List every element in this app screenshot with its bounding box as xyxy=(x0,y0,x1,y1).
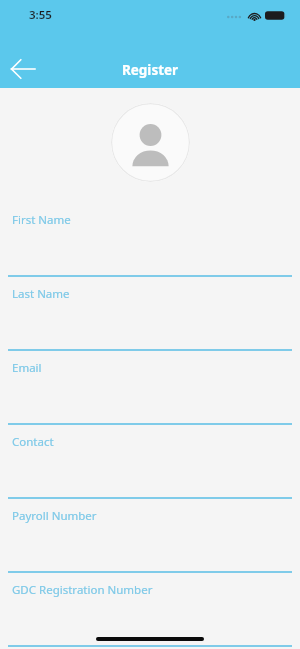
button[interactable]: Profile photo xyxy=(111,103,190,182)
button[interactable]: Email xyxy=(0,351,300,425)
staticText: 3:55 xyxy=(29,7,52,23)
staticText: Contact xyxy=(12,434,54,450)
staticText: GDC Registration Number xyxy=(12,582,153,598)
staticText: Register xyxy=(0,61,300,79)
staticText: First Name xyxy=(12,212,71,228)
button[interactable]: First Name xyxy=(0,203,300,277)
button[interactable]: Back xyxy=(4,50,42,88)
staticText: Last Name xyxy=(12,286,70,302)
button[interactable]: Payroll Number xyxy=(0,499,300,573)
button[interactable]: Contact xyxy=(0,425,300,499)
staticText: Email xyxy=(12,360,42,376)
button[interactable]: Last Name xyxy=(0,277,300,351)
staticText: Payroll Number xyxy=(12,508,97,524)
button[interactable]: GDC Registration Number xyxy=(0,573,300,647)
